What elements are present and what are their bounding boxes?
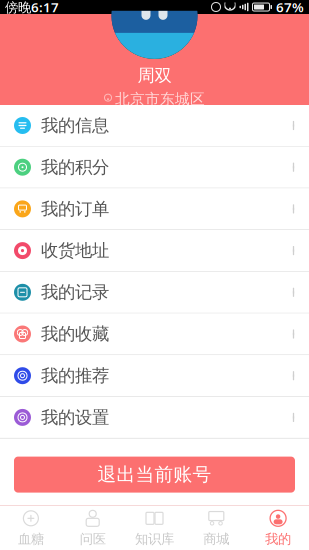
staticText: 问医 bbox=[80, 531, 106, 547]
button[interactable]: 知识库 bbox=[124, 506, 185, 550]
button[interactable]: 我的记录 bbox=[0, 272, 309, 313]
staticText: 67% bbox=[276, 0, 304, 16]
staticText: 我的收藏 bbox=[41, 323, 109, 345]
staticText: 血糖 bbox=[18, 531, 44, 547]
button[interactable]: 我的设置 bbox=[0, 397, 309, 439]
button[interactable]: 我的信息 bbox=[0, 105, 309, 147]
staticText: 我的 bbox=[265, 531, 291, 547]
staticText: 我的订单 bbox=[41, 198, 109, 220]
button[interactable]: 商城 bbox=[185, 506, 247, 550]
button[interactable]: 我的 bbox=[247, 506, 309, 550]
staticText: 退出当前账号 bbox=[97, 463, 211, 486]
button[interactable]: 我的收藏 bbox=[0, 313, 309, 355]
button[interactable]: 我的积分 bbox=[0, 147, 309, 188]
button[interactable]: 我的推荐 bbox=[0, 355, 309, 397]
staticText: 我的信息 bbox=[41, 115, 109, 136]
staticText: 我的记录 bbox=[41, 282, 109, 303]
staticText: 我的推荐 bbox=[41, 365, 109, 386]
staticText: 北京市东城区 bbox=[115, 90, 205, 108]
staticText: 收货地址 bbox=[41, 240, 109, 261]
button[interactable]: 收货地址 bbox=[0, 230, 309, 272]
staticText: 我的积分 bbox=[41, 157, 109, 178]
staticText: 商城 bbox=[203, 531, 229, 547]
staticText: 傍晚6:17 bbox=[5, 0, 59, 16]
button[interactable]: 退出当前账号 bbox=[14, 457, 295, 493]
staticText: 我的设置 bbox=[41, 407, 109, 428]
button[interactable]: 问医 bbox=[62, 506, 124, 550]
staticText: 知识库 bbox=[135, 531, 174, 547]
button[interactable]: 我的订单 bbox=[0, 188, 309, 230]
staticText: 周双 bbox=[137, 65, 171, 86]
button[interactable]: 血糖 bbox=[0, 506, 62, 550]
